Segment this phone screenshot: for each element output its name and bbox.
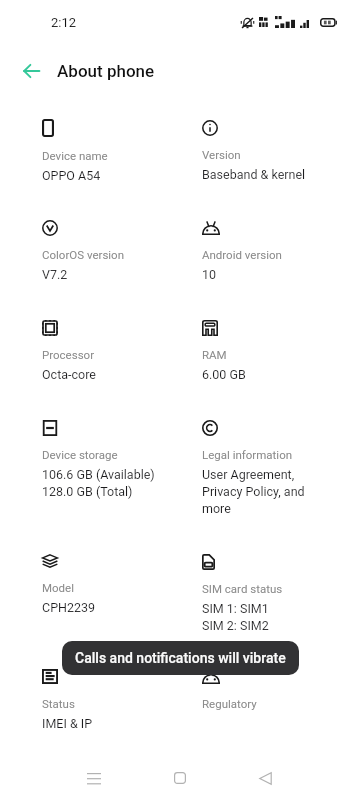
button[interactable]: Back [11,57,51,85]
staticText: ColorOS version [42,248,125,261]
staticText: Processor [42,348,95,361]
staticText: IMEI & IP [42,716,93,731]
button[interactable]: Calls and notifications will vibrate [62,641,299,675]
other: Ringer set to vibrate [241,17,254,29]
staticText: Baseband & kernel [202,167,306,182]
button[interactable]: Device name [42,119,192,183]
staticText: User Agreement, Privacy Policy, and more [202,467,305,516]
staticText: Calls and notifications will vibrate [75,650,286,666]
button[interactable]: Home [156,754,204,800]
staticText: 10 [202,267,217,282]
button[interactable]: Device storage [42,420,192,499]
button[interactable]: Version [202,120,352,182]
staticText: Version [202,148,241,161]
button[interactable]: SIM card status [202,554,352,633]
staticText: CPH2239 [42,600,96,615]
staticText: 2:12 [51,15,77,30]
staticText: SIM card status [202,582,283,595]
staticText: Device storage [42,448,118,461]
button[interactable]: Legal information [202,420,352,516]
button[interactable]: RAM [202,320,352,382]
staticText: About phone [57,61,155,81]
button[interactable]: Status [42,669,192,731]
button[interactable]: Processor [42,320,192,382]
button[interactable]: ColorOS version [42,220,192,282]
staticText: Android version [202,248,282,261]
staticText: Legal information [202,448,293,461]
button[interactable]: Android version [202,220,352,282]
staticText: Regulatory [202,697,257,710]
staticText: 6.00 GB [202,367,246,382]
staticText: RAM [202,348,227,361]
button[interactable]: Model [42,554,192,615]
staticText: OPPO A54 [42,168,101,183]
button[interactable]: Recent apps [70,754,118,800]
button[interactable]: Regulatory [202,669,352,716]
staticText: SIM 1: SIM1 SIM 2: SIM2 [202,601,269,633]
staticText: Octa-core [42,367,96,382]
staticText: Status [42,697,75,710]
staticText: Device name [42,149,108,162]
staticText: V7.2 [42,267,68,282]
staticText: 106.6 GB (Available) 128.0 GB (Total) [42,467,155,499]
staticText: Model [42,581,74,594]
button[interactable]: Back [241,754,289,800]
